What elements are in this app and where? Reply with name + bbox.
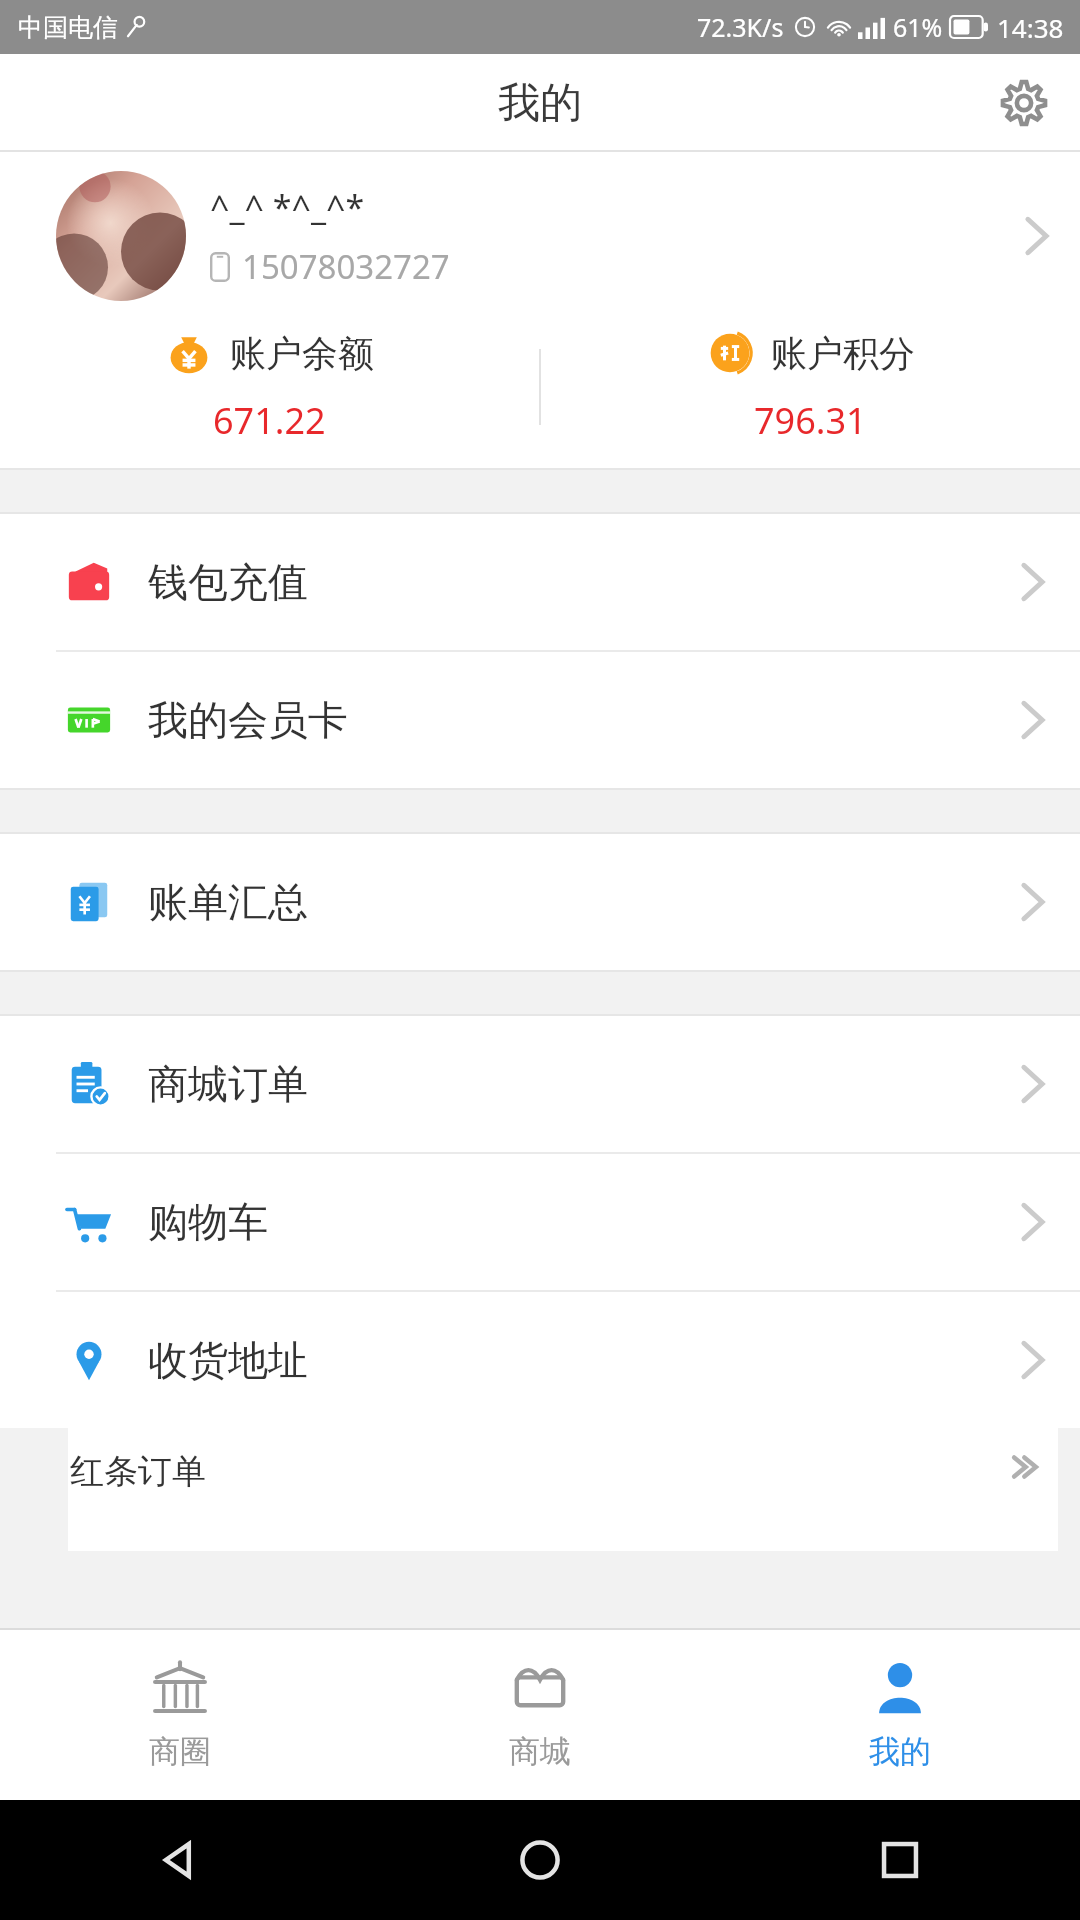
button[interactable]: 账户积分: [541, 330, 1080, 445]
staticText: 15078032727: [242, 244, 450, 289]
staticText: ^_^ *^_^*: [210, 184, 365, 230]
staticText: 收货地址: [148, 1335, 1020, 1385]
staticText: 账户积分: [771, 331, 915, 376]
staticText: 商城订单: [148, 1059, 1020, 1109]
button[interactable]: 主页: [360, 1800, 720, 1920]
staticText: 账户余额: [230, 331, 374, 376]
button[interactable]: 商城订单: [0, 1016, 1080, 1152]
button[interactable]: 钱包充值: [0, 514, 1080, 650]
button[interactable]: 收货地址: [0, 1292, 1080, 1428]
staticText: 61%: [893, 10, 943, 44]
staticText: 72.3K/s: [697, 10, 784, 44]
staticText: 商城: [509, 1732, 571, 1771]
button[interactable]: 购物车: [0, 1154, 1080, 1290]
staticText: 671.22: [213, 396, 326, 445]
button[interactable]: 商圈: [0, 1630, 360, 1800]
staticText: 我的: [869, 1732, 931, 1771]
button[interactable]: ^_^ *^_^*: [0, 152, 1080, 320]
staticText: 商圈: [149, 1732, 211, 1771]
button[interactable]: 账户余额: [0, 330, 539, 445]
button[interactable]: 我的: [720, 1630, 1080, 1800]
staticText: 14:38: [997, 10, 1064, 45]
staticText: 796.31: [754, 396, 867, 445]
button[interactable]: 我的会员卡: [0, 652, 1080, 788]
button[interactable]: 最近任务: [720, 1800, 1080, 1920]
staticText: 我的: [498, 77, 582, 130]
button[interactable]: 设置: [980, 59, 1068, 147]
staticText: 钱包充值: [148, 557, 1020, 607]
staticText: 我的会员卡: [148, 695, 1020, 745]
staticText: 红条订单: [70, 1450, 1008, 1493]
button[interactable]: 红条订单: [68, 1428, 1058, 1551]
staticText: 中国电信: [18, 12, 118, 43]
button[interactable]: 商城: [360, 1630, 720, 1800]
button[interactable]: 账单汇总: [0, 834, 1080, 970]
staticText: 账单汇总: [148, 877, 1020, 927]
button[interactable]: 返回: [0, 1800, 360, 1920]
staticText: 购物车: [148, 1197, 1020, 1247]
